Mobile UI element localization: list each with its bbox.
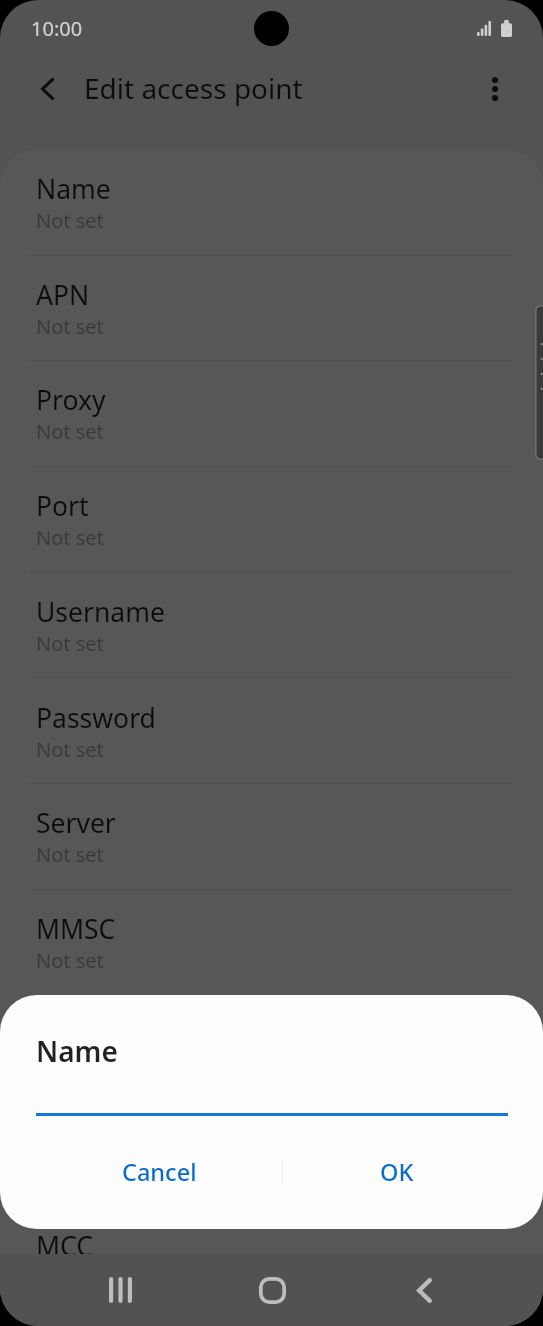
button[interactable]: More options — [473, 68, 517, 112]
staticText: Not set — [36, 418, 104, 445]
staticText: Server — [36, 805, 116, 841]
staticText: Name — [36, 171, 111, 207]
button[interactable]: Recents — [90, 1260, 150, 1320]
button[interactable]: OK — [284, 1135, 509, 1209]
staticText: Not set — [36, 736, 104, 763]
staticText: Password — [36, 700, 156, 736]
button[interactable]: Cancel — [36, 1135, 282, 1209]
staticText: Not set — [36, 841, 104, 868]
button[interactable]: Server — [0, 784, 543, 889]
staticText: MMS proxy — [36, 1017, 176, 1053]
button[interactable]: Navigate up — [25, 68, 69, 112]
staticText: Not set — [36, 947, 104, 974]
button[interactable]: Back — [393, 1260, 453, 1320]
staticText: OK — [380, 1156, 414, 1188]
button[interactable]: Home — [242, 1260, 302, 1320]
button[interactable]: Port — [0, 467, 543, 572]
button[interactable]: APN — [0, 256, 543, 361]
staticText: Cancel — [122, 1156, 197, 1188]
staticText: Name — [36, 1032, 118, 1070]
staticText: Edit access point — [84, 69, 303, 107]
button[interactable]: Name — [0, 150, 543, 255]
staticText: Proxy — [36, 382, 106, 418]
button[interactable]: Password — [0, 679, 543, 784]
staticText: Not set — [36, 630, 104, 657]
button[interactable]: MMS port — [0, 1101, 543, 1206]
staticText: MMSC — [36, 911, 116, 947]
staticText: MCC — [36, 1228, 94, 1264]
staticText: Not set — [36, 313, 104, 340]
button[interactable]: MMS proxy — [0, 996, 543, 1101]
staticText: APN — [36, 277, 90, 313]
staticText: 10:00 — [31, 15, 83, 42]
staticText: Not set — [36, 1053, 104, 1080]
staticText: Port — [36, 488, 89, 524]
staticText: Not set — [36, 524, 104, 551]
staticText: Not set — [36, 207, 104, 234]
button[interactable]: Proxy — [0, 361, 543, 466]
button[interactable]: Username — [0, 573, 543, 678]
button[interactable]: MMSC — [0, 890, 543, 995]
button[interactable]: MCC — [0, 1207, 543, 1312]
staticText: Username — [36, 594, 165, 630]
